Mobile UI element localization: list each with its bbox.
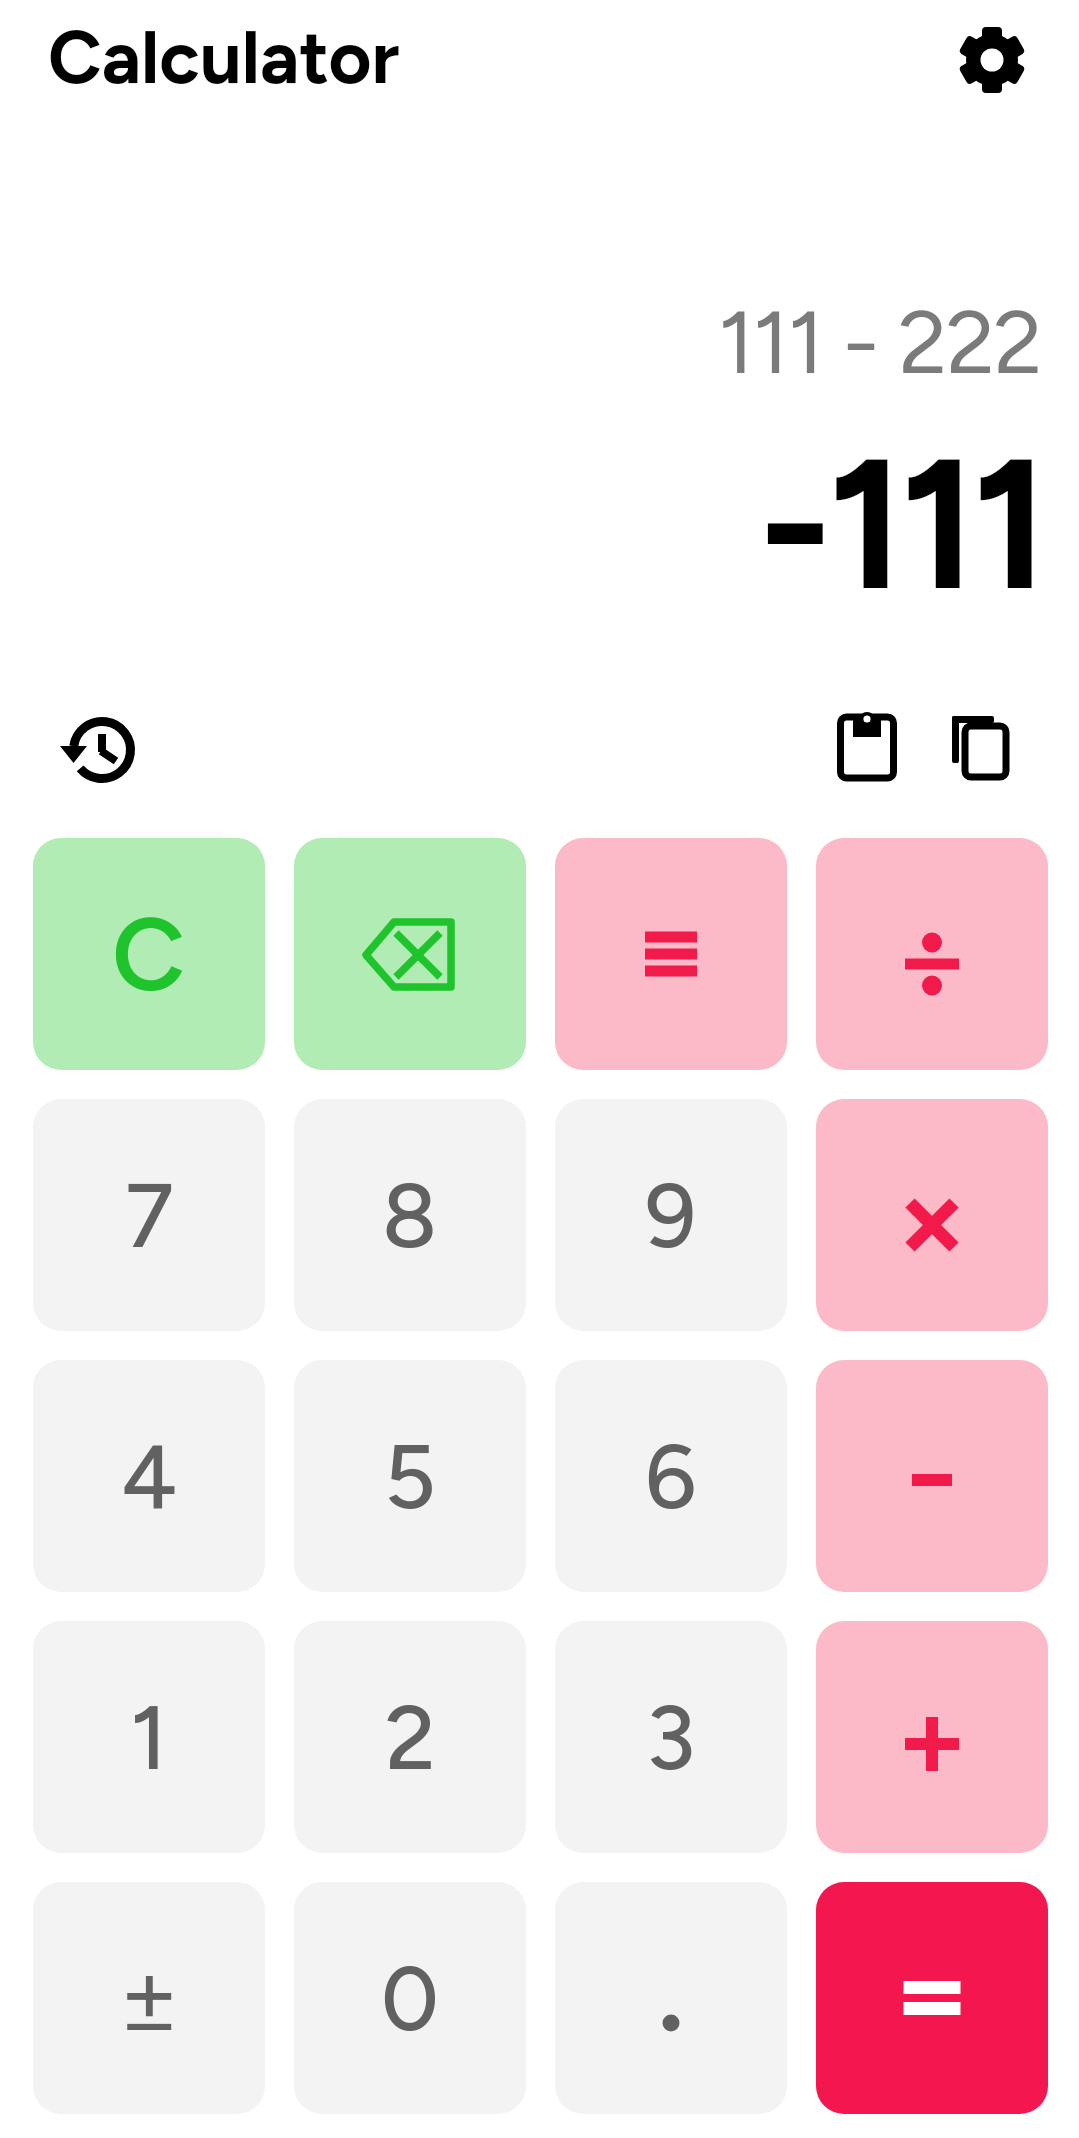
button[interactable] xyxy=(555,1882,787,2114)
button[interactable]: 8 xyxy=(294,1099,526,1331)
staticText: 9 xyxy=(645,1161,697,1269)
staticText: ± xyxy=(119,1938,180,2054)
staticText: Calculator xyxy=(48,13,400,102)
button[interactable]: 2 xyxy=(294,1621,526,1853)
staticText: 6 xyxy=(645,1422,697,1530)
button[interactable] xyxy=(816,838,1048,1070)
button[interactable]: 7 xyxy=(33,1099,265,1331)
button[interactable]: 6 xyxy=(555,1360,787,1592)
staticText: 8 xyxy=(382,1161,438,1269)
button[interactable]: 5 xyxy=(294,1360,526,1592)
staticText: C xyxy=(112,894,186,1015)
staticText: 4 xyxy=(121,1422,178,1530)
staticText: 0 xyxy=(381,1944,439,2052)
staticText: 1 xyxy=(130,1683,168,1791)
button[interactable] xyxy=(555,838,787,1070)
button[interactable] xyxy=(816,1882,1048,2114)
button[interactable]: 0 xyxy=(294,1882,526,2114)
staticText: 2 xyxy=(385,1683,436,1791)
button[interactable]: 3 xyxy=(555,1621,787,1853)
button[interactable]: ± xyxy=(33,1882,265,2114)
button[interactable] xyxy=(816,1099,1048,1331)
button[interactable] xyxy=(836,710,898,782)
staticText: -111 xyxy=(758,414,1045,634)
button[interactable] xyxy=(66,714,138,786)
staticText: 5 xyxy=(384,1422,436,1530)
button[interactable] xyxy=(948,712,1010,782)
staticText: 7 xyxy=(125,1161,174,1269)
staticText: 111 - 222 xyxy=(718,289,1042,395)
button[interactable]: 4 xyxy=(33,1360,265,1592)
button[interactable]: C xyxy=(33,838,265,1070)
button[interactable]: 1 xyxy=(33,1621,265,1853)
button[interactable]: 9 xyxy=(555,1099,787,1331)
staticText: 3 xyxy=(646,1683,696,1791)
button[interactable] xyxy=(959,27,1025,93)
button[interactable] xyxy=(816,1360,1048,1592)
button[interactable] xyxy=(294,838,526,1070)
button[interactable] xyxy=(816,1621,1048,1853)
